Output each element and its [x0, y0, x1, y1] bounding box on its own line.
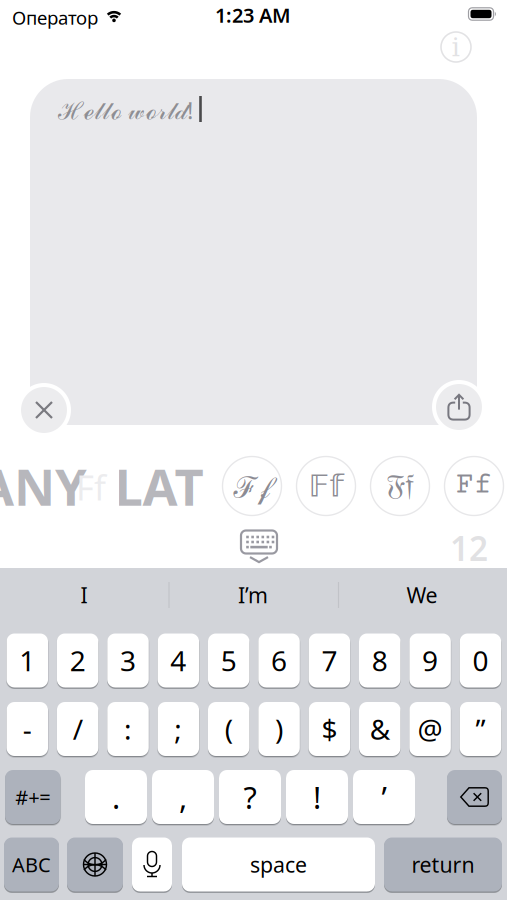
button[interactable]: Dictate — [132, 837, 172, 891]
button[interactable]: @ — [409, 702, 451, 756]
button[interactable]: ( — [208, 702, 249, 756]
button[interactable]: - — [7, 702, 48, 756]
button[interactable]: / — [57, 702, 98, 756]
button[interactable]: $ — [309, 702, 350, 756]
staticText: We — [406, 581, 437, 609]
staticText: - — [23, 710, 32, 748]
button[interactable]: ? — [219, 770, 281, 824]
staticText: : — [124, 710, 132, 748]
button[interactable]: Share — [432, 380, 486, 434]
staticText: ; — [174, 710, 182, 748]
staticText: 3 — [120, 642, 136, 679]
staticText: LAT — [114, 452, 203, 520]
button[interactable]: : — [107, 702, 149, 756]
button[interactable]: , — [152, 770, 214, 824]
button[interactable]: . — [85, 770, 147, 824]
button[interactable]: Fraktur font — [370, 456, 430, 516]
button[interactable]: Next keyboard — [67, 837, 123, 891]
button[interactable]: ; — [158, 702, 199, 756]
staticText: 7 — [321, 642, 337, 679]
button[interactable]: #+= — [5, 770, 60, 824]
button[interactable]: space — [182, 837, 375, 891]
button[interactable]: 8 — [359, 633, 400, 687]
staticText: ABC — [12, 851, 51, 878]
staticText: , — [179, 777, 187, 817]
staticText: $ — [321, 710, 337, 748]
staticText: ℋℯ𝓁𝓁ℴ 𝓌ℴ𝓇𝓁𝒹! — [58, 94, 193, 126]
button[interactable]: 2 — [57, 633, 98, 687]
staticText: return — [411, 850, 474, 879]
button[interactable]: Delete — [447, 770, 502, 824]
button[interactable]: 3 — [107, 633, 149, 687]
staticText: @ — [418, 710, 443, 748]
button[interactable]: 4 — [158, 633, 199, 687]
staticText: 4 — [170, 642, 186, 679]
staticText: 1 — [19, 642, 35, 679]
staticText: ” — [475, 710, 485, 748]
button[interactable]: ! — [286, 770, 348, 824]
button[interactable]: Script font — [222, 456, 282, 516]
button[interactable]: Info — [438, 29, 474, 65]
button[interactable]: Outline font — [296, 456, 356, 516]
button[interactable]: & — [359, 702, 400, 756]
staticText: I — [80, 581, 87, 609]
staticText: ’ — [381, 777, 386, 817]
staticText: ℱ𝒻 — [233, 466, 270, 505]
staticText: . — [112, 777, 120, 817]
button[interactable]: ANY — [0, 452, 87, 520]
button[interactable]: return — [384, 837, 502, 891]
staticText: & — [370, 710, 390, 748]
staticText: 6 — [271, 642, 287, 679]
button[interactable]: We — [347, 573, 497, 617]
button[interactable]: 0 — [460, 633, 501, 687]
button[interactable]: I’m — [178, 573, 328, 617]
button[interactable]: ” — [460, 702, 501, 756]
button[interactable]: 5 — [208, 633, 249, 687]
staticText: 12 — [450, 526, 488, 570]
staticText: / — [73, 710, 83, 748]
button[interactable]: ) — [258, 702, 300, 756]
button[interactable]: ABC — [4, 837, 59, 891]
staticText: 8 — [372, 642, 388, 679]
button[interactable]: I — [9, 573, 159, 617]
button[interactable]: Dismiss keyboard — [237, 527, 281, 567]
button[interactable]: 7 — [309, 633, 350, 687]
staticText: I’m — [238, 581, 268, 609]
staticText: Ff — [456, 469, 492, 502]
staticText: ? — [243, 777, 256, 817]
staticText: 2 — [70, 642, 86, 679]
button[interactable]: LAT — [114, 452, 203, 520]
button[interactable]: 6 — [258, 633, 300, 687]
staticText: Оператор — [12, 5, 98, 30]
staticText: i — [451, 31, 460, 62]
staticText: 9 — [422, 642, 438, 679]
staticText: ANY — [0, 452, 87, 520]
staticText: ( — [225, 710, 233, 748]
staticText: 0 — [472, 642, 488, 679]
button[interactable]: ’ — [353, 770, 415, 824]
staticText: ) — [275, 710, 283, 748]
staticText: space — [250, 850, 307, 879]
staticText: 1:23 AM — [215, 2, 291, 28]
button[interactable]: 9 — [409, 633, 451, 687]
button[interactable]: Serif font — [444, 456, 504, 516]
staticText: #+= — [15, 784, 50, 810]
staticText: 𝔽𝕗 — [308, 469, 343, 503]
button[interactable]: 1 — [7, 633, 48, 687]
staticText: 5 — [221, 642, 237, 679]
staticText: Ff — [76, 464, 106, 510]
staticText: ! — [313, 777, 321, 817]
button[interactable]: Clear text — [17, 383, 71, 437]
staticText: 𝔉𝔣 — [386, 471, 414, 501]
